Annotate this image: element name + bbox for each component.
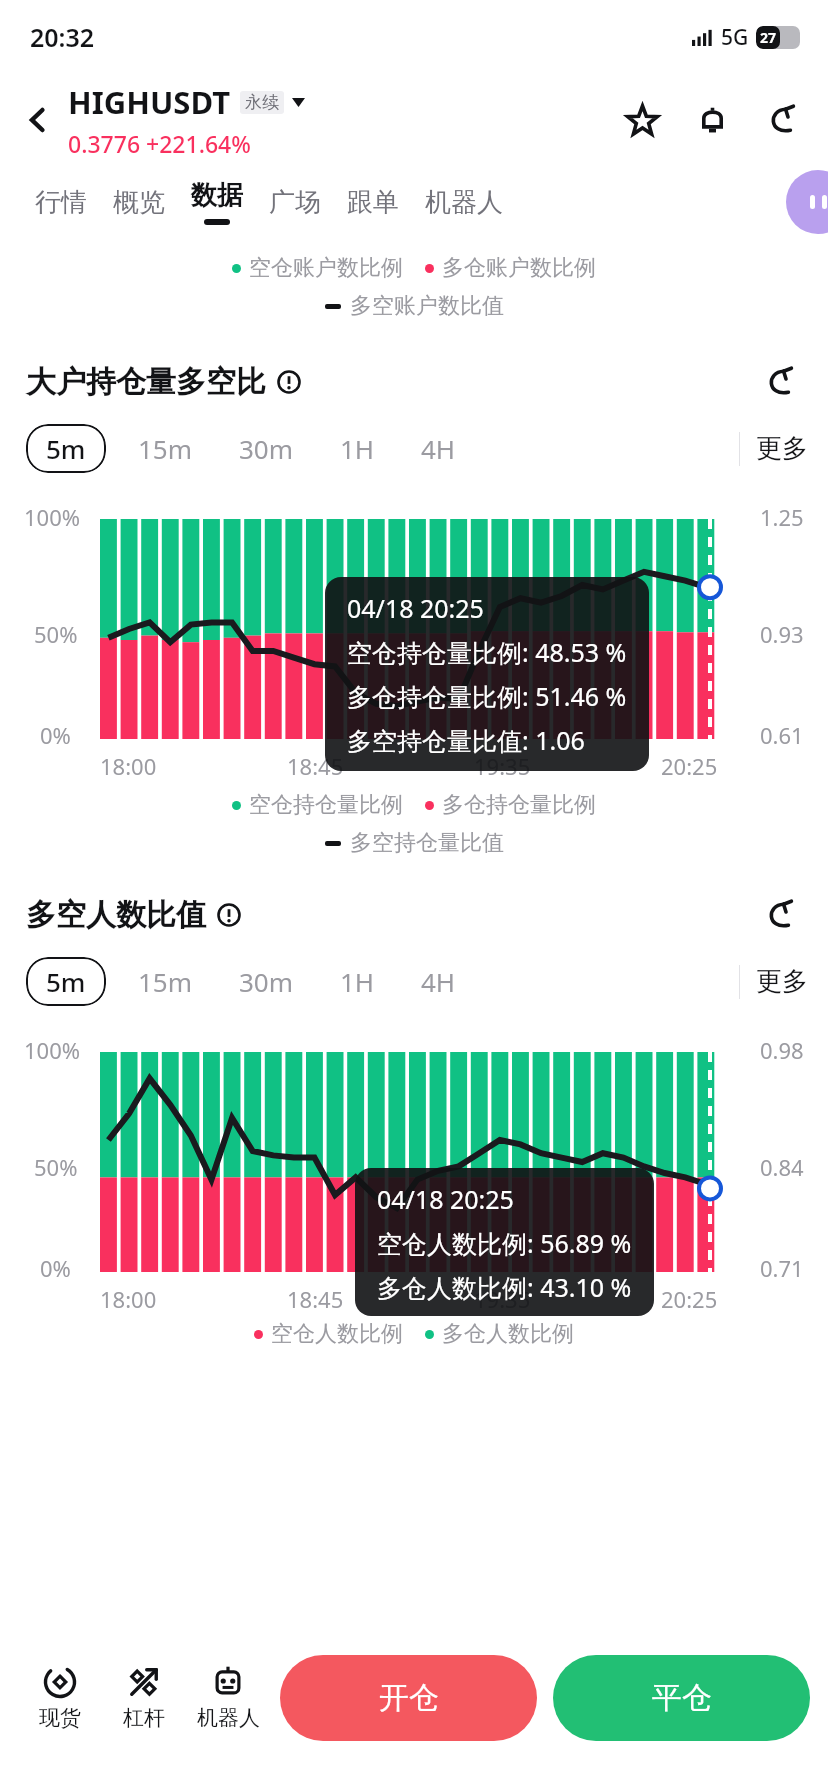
- staticText: 0.98: [760, 1035, 804, 1065]
- button[interactable]: 机器人: [412, 166, 516, 238]
- staticText: 0.93: [760, 619, 804, 649]
- button[interactable]: Favorite: [618, 96, 666, 144]
- staticText: 杠杆: [123, 1705, 165, 1731]
- staticText: 19:35: [474, 751, 531, 781]
- staticText: 15m: [138, 964, 193, 999]
- button[interactable]: 更多: [756, 965, 808, 998]
- button[interactable]: Expand: [758, 893, 802, 937]
- button[interactable]: 15m: [124, 955, 207, 1008]
- staticText: 0.3776 +221.64%: [68, 128, 251, 159]
- staticText: 数据: [191, 179, 243, 212]
- button[interactable]: Info: [214, 900, 244, 930]
- staticText: 15m: [138, 431, 193, 466]
- staticText: 5G: [721, 23, 749, 52]
- button[interactable]: 行情: [22, 166, 100, 238]
- staticText: 100%: [24, 1035, 81, 1065]
- staticText: 1H: [340, 964, 375, 999]
- staticText: 机器人: [425, 186, 503, 219]
- button[interactable]: 4H: [407, 422, 470, 475]
- staticText: 19:35: [474, 1284, 531, 1314]
- staticText: 空仓持仓量比例: 48.53 %: [347, 635, 627, 669]
- staticText: 空仓人数比例: 56.89 %: [377, 1226, 632, 1260]
- staticText: 多空人数比值: [26, 896, 206, 934]
- staticText: 更多: [756, 432, 808, 465]
- button[interactable]: 跟单: [334, 166, 412, 238]
- staticText: 多空持仓量比值: 1.06: [347, 723, 585, 757]
- button[interactable]: 概览: [100, 166, 178, 238]
- staticText: 04/18 20:25: [347, 591, 484, 625]
- staticText: 行情: [35, 186, 87, 219]
- staticText: 广场: [269, 186, 321, 219]
- staticText: 18:00: [100, 751, 157, 781]
- staticText: 多仓持仓量比例: [442, 791, 596, 819]
- staticText: HIGHUSDT: [68, 81, 231, 123]
- button[interactable]: 5m: [26, 957, 106, 1006]
- staticText: 5m: [46, 964, 86, 999]
- button[interactable]: 30m: [225, 422, 308, 475]
- staticText: 4H: [421, 964, 456, 999]
- button[interactable]: Alert: [688, 96, 736, 144]
- button[interactable]: 4H: [407, 955, 470, 1008]
- staticText: 空仓持仓量比例: [249, 791, 403, 819]
- button[interactable]: 30m: [225, 955, 308, 1008]
- button[interactable]: 现货: [18, 1665, 102, 1731]
- staticText: 0.84: [760, 1152, 804, 1182]
- button[interactable]: 平仓: [553, 1655, 810, 1741]
- button[interactable]: 1H: [326, 422, 389, 475]
- staticText: 现货: [39, 1705, 81, 1731]
- button[interactable]: 更多: [756, 432, 808, 465]
- staticText: 多仓持仓量比例: 51.46 %: [347, 679, 627, 713]
- staticText: 多仓账户数比例: [442, 254, 596, 282]
- staticText: 50%: [34, 1152, 78, 1182]
- button[interactable]: Assistant: [786, 170, 828, 234]
- button[interactable]: 数据: [178, 166, 256, 238]
- button[interactable]: Expand: [758, 360, 802, 404]
- staticText: 概览: [113, 186, 165, 219]
- staticText: 18:00: [100, 1284, 157, 1314]
- staticText: 20:25: [661, 751, 718, 781]
- button[interactable]: Back: [14, 96, 62, 144]
- staticText: 平仓: [652, 1679, 712, 1717]
- staticText: 多空持仓量比值: [350, 829, 504, 857]
- staticText: 多仓人数比例: [442, 1320, 574, 1348]
- staticText: 50%: [34, 619, 78, 649]
- staticText: 30m: [239, 431, 294, 466]
- staticText: 空仓账户数比例: [249, 254, 403, 282]
- button[interactable]: 5m: [26, 424, 106, 473]
- staticText: 0%: [40, 1253, 71, 1283]
- button[interactable]: 广场: [256, 166, 334, 238]
- staticText: 更多: [756, 965, 808, 998]
- staticText: 4H: [421, 431, 456, 466]
- staticText: 100%: [24, 502, 81, 532]
- staticText: 多仓人数比例: 43.10 %: [377, 1270, 632, 1302]
- staticText: 跟单: [347, 186, 399, 219]
- button[interactable]: 15m: [124, 422, 207, 475]
- staticText: 5m: [46, 431, 86, 466]
- button[interactable]: 1H: [326, 955, 389, 1008]
- staticText: 0.61: [760, 720, 804, 750]
- button[interactable]: Share: [758, 96, 806, 144]
- staticText: 大户持仓量多空比: [26, 363, 266, 401]
- staticText: 0.71: [760, 1253, 804, 1283]
- staticText: 机器人: [197, 1705, 260, 1731]
- staticText: 18:45: [287, 751, 344, 781]
- staticText: 空仓人数比例: [271, 1320, 403, 1348]
- staticText: 多空账户数比值: [350, 292, 504, 320]
- staticText: 永续: [245, 92, 279, 113]
- staticText: 20:25: [661, 1284, 718, 1314]
- staticText: 开仓: [379, 1679, 439, 1717]
- button[interactable]: Info: [274, 367, 304, 397]
- staticText: 1H: [340, 431, 375, 466]
- staticText: 04/18 20:25: [377, 1182, 514, 1216]
- staticText: 27: [760, 28, 777, 47]
- staticText: 1.25: [760, 502, 804, 532]
- button[interactable]: 机器人: [186, 1665, 270, 1731]
- button[interactable]: 杠杆: [102, 1665, 186, 1731]
- staticText: 20:32: [30, 20, 95, 54]
- staticText: 0%: [40, 720, 71, 750]
- button[interactable]: 开仓: [280, 1655, 537, 1741]
- staticText: 18:45: [287, 1284, 344, 1314]
- staticText: 30m: [239, 964, 294, 999]
